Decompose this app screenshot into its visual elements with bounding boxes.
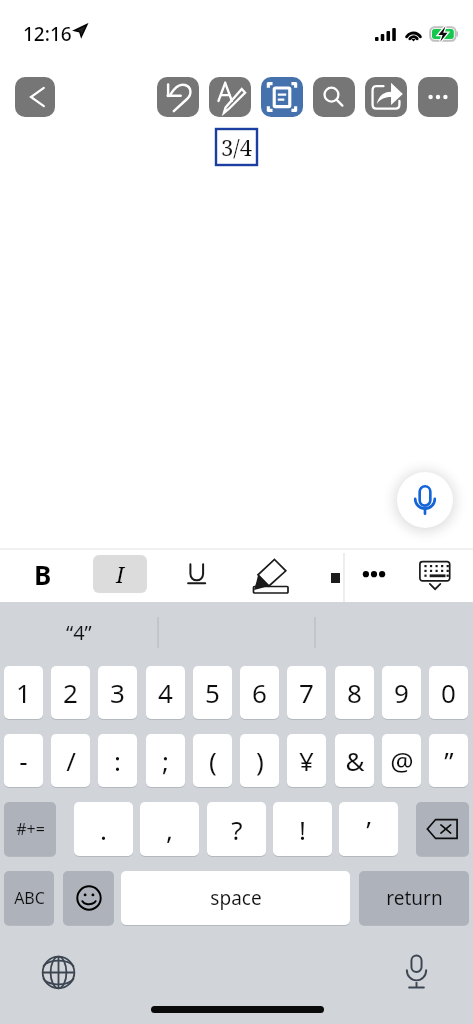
staticText: #+=	[16, 818, 45, 840]
button[interactable]: 3/4	[216, 129, 257, 165]
button[interactable]: :	[98, 734, 137, 787]
staticText: I	[116, 559, 125, 589]
staticText: 5	[205, 675, 220, 710]
staticText: “4”	[66, 619, 92, 646]
button[interactable]: Change keyboard	[36, 950, 80, 994]
button[interactable]: Search	[313, 77, 355, 117]
button[interactable]: ¥	[287, 734, 326, 787]
button[interactable]: More options	[418, 77, 458, 117]
button[interactable]: return	[359, 871, 469, 925]
staticText: ?	[231, 812, 243, 847]
button[interactable]: Scan text	[261, 77, 303, 117]
staticText: .	[100, 812, 107, 847]
staticText: space	[210, 885, 262, 911]
button[interactable]: Back	[15, 77, 55, 117]
button[interactable]: -	[4, 734, 43, 787]
button[interactable]: 4	[146, 666, 185, 719]
staticText: 3/4	[221, 132, 252, 162]
staticText: 7	[299, 675, 314, 710]
button[interactable]: I	[93, 555, 147, 593]
staticText: ;	[162, 743, 169, 778]
staticText: !	[299, 812, 306, 847]
button[interactable]: ”	[429, 734, 468, 787]
button[interactable]: 6	[240, 666, 279, 719]
staticText: -	[19, 743, 28, 778]
button[interactable]: Emoji	[63, 871, 114, 925]
staticText: ’	[366, 812, 371, 847]
button[interactable]: 9	[382, 666, 421, 719]
staticText: 6	[252, 675, 267, 710]
staticText: B	[34, 557, 52, 592]
staticText: ABC	[14, 887, 45, 909]
button[interactable]: space	[121, 871, 350, 925]
staticText: return	[386, 885, 443, 911]
staticText: 3	[110, 675, 125, 710]
button[interactable]: 0	[429, 666, 468, 719]
button[interactable]: Handwriting	[209, 77, 251, 117]
button[interactable]: ABC	[4, 871, 54, 925]
staticText: ”	[444, 743, 454, 778]
staticText: 8	[347, 675, 362, 710]
button[interactable]: 3	[98, 666, 137, 719]
button[interactable]: ?	[207, 802, 266, 856]
button[interactable]: @	[382, 734, 421, 787]
button[interactable]: Dictation	[394, 950, 438, 994]
staticText: 0	[441, 675, 456, 710]
staticText: 12:16	[23, 21, 72, 47]
button[interactable]: &	[335, 734, 374, 787]
button[interactable]: 8	[335, 666, 374, 719]
staticText: 9	[394, 675, 409, 710]
button[interactable]: /	[51, 734, 90, 787]
button[interactable]: Undo	[157, 77, 199, 117]
button[interactable]	[172, 552, 222, 594]
staticText: @	[390, 743, 414, 778]
staticText: 1	[16, 675, 31, 710]
button[interactable]: Backspace	[416, 802, 469, 856]
button[interactable]: Hide keyboard	[415, 550, 460, 595]
staticText: )	[256, 743, 264, 778]
button[interactable]: 2	[51, 666, 90, 719]
button[interactable]: .	[74, 802, 133, 856]
button[interactable]: ,	[140, 802, 199, 856]
button[interactable]: 7	[287, 666, 326, 719]
button[interactable]: Highlight	[252, 556, 294, 594]
button[interactable]: 5	[193, 666, 232, 719]
button[interactable]: (	[193, 734, 232, 787]
staticText: 4	[158, 675, 173, 710]
button[interactable]: Voice input	[397, 472, 453, 528]
staticText: 2	[63, 675, 78, 710]
button[interactable]: ;	[146, 734, 185, 787]
button[interactable]: )	[240, 734, 279, 787]
staticText: /	[66, 743, 76, 778]
button[interactable]: “4”	[16, 612, 141, 652]
button[interactable]: 1	[4, 666, 43, 719]
button[interactable]: !	[273, 802, 332, 856]
button[interactable]: #+=	[4, 802, 56, 856]
button[interactable]: Share	[365, 77, 407, 117]
button[interactable]: B	[18, 555, 68, 593]
staticText: ,	[166, 812, 173, 847]
staticText: (	[209, 743, 217, 778]
staticText: :	[114, 743, 121, 778]
staticText: &	[345, 743, 365, 778]
staticText: ¥	[299, 743, 314, 778]
button[interactable]: ’	[339, 802, 398, 856]
button[interactable]: More formatting	[354, 554, 394, 594]
